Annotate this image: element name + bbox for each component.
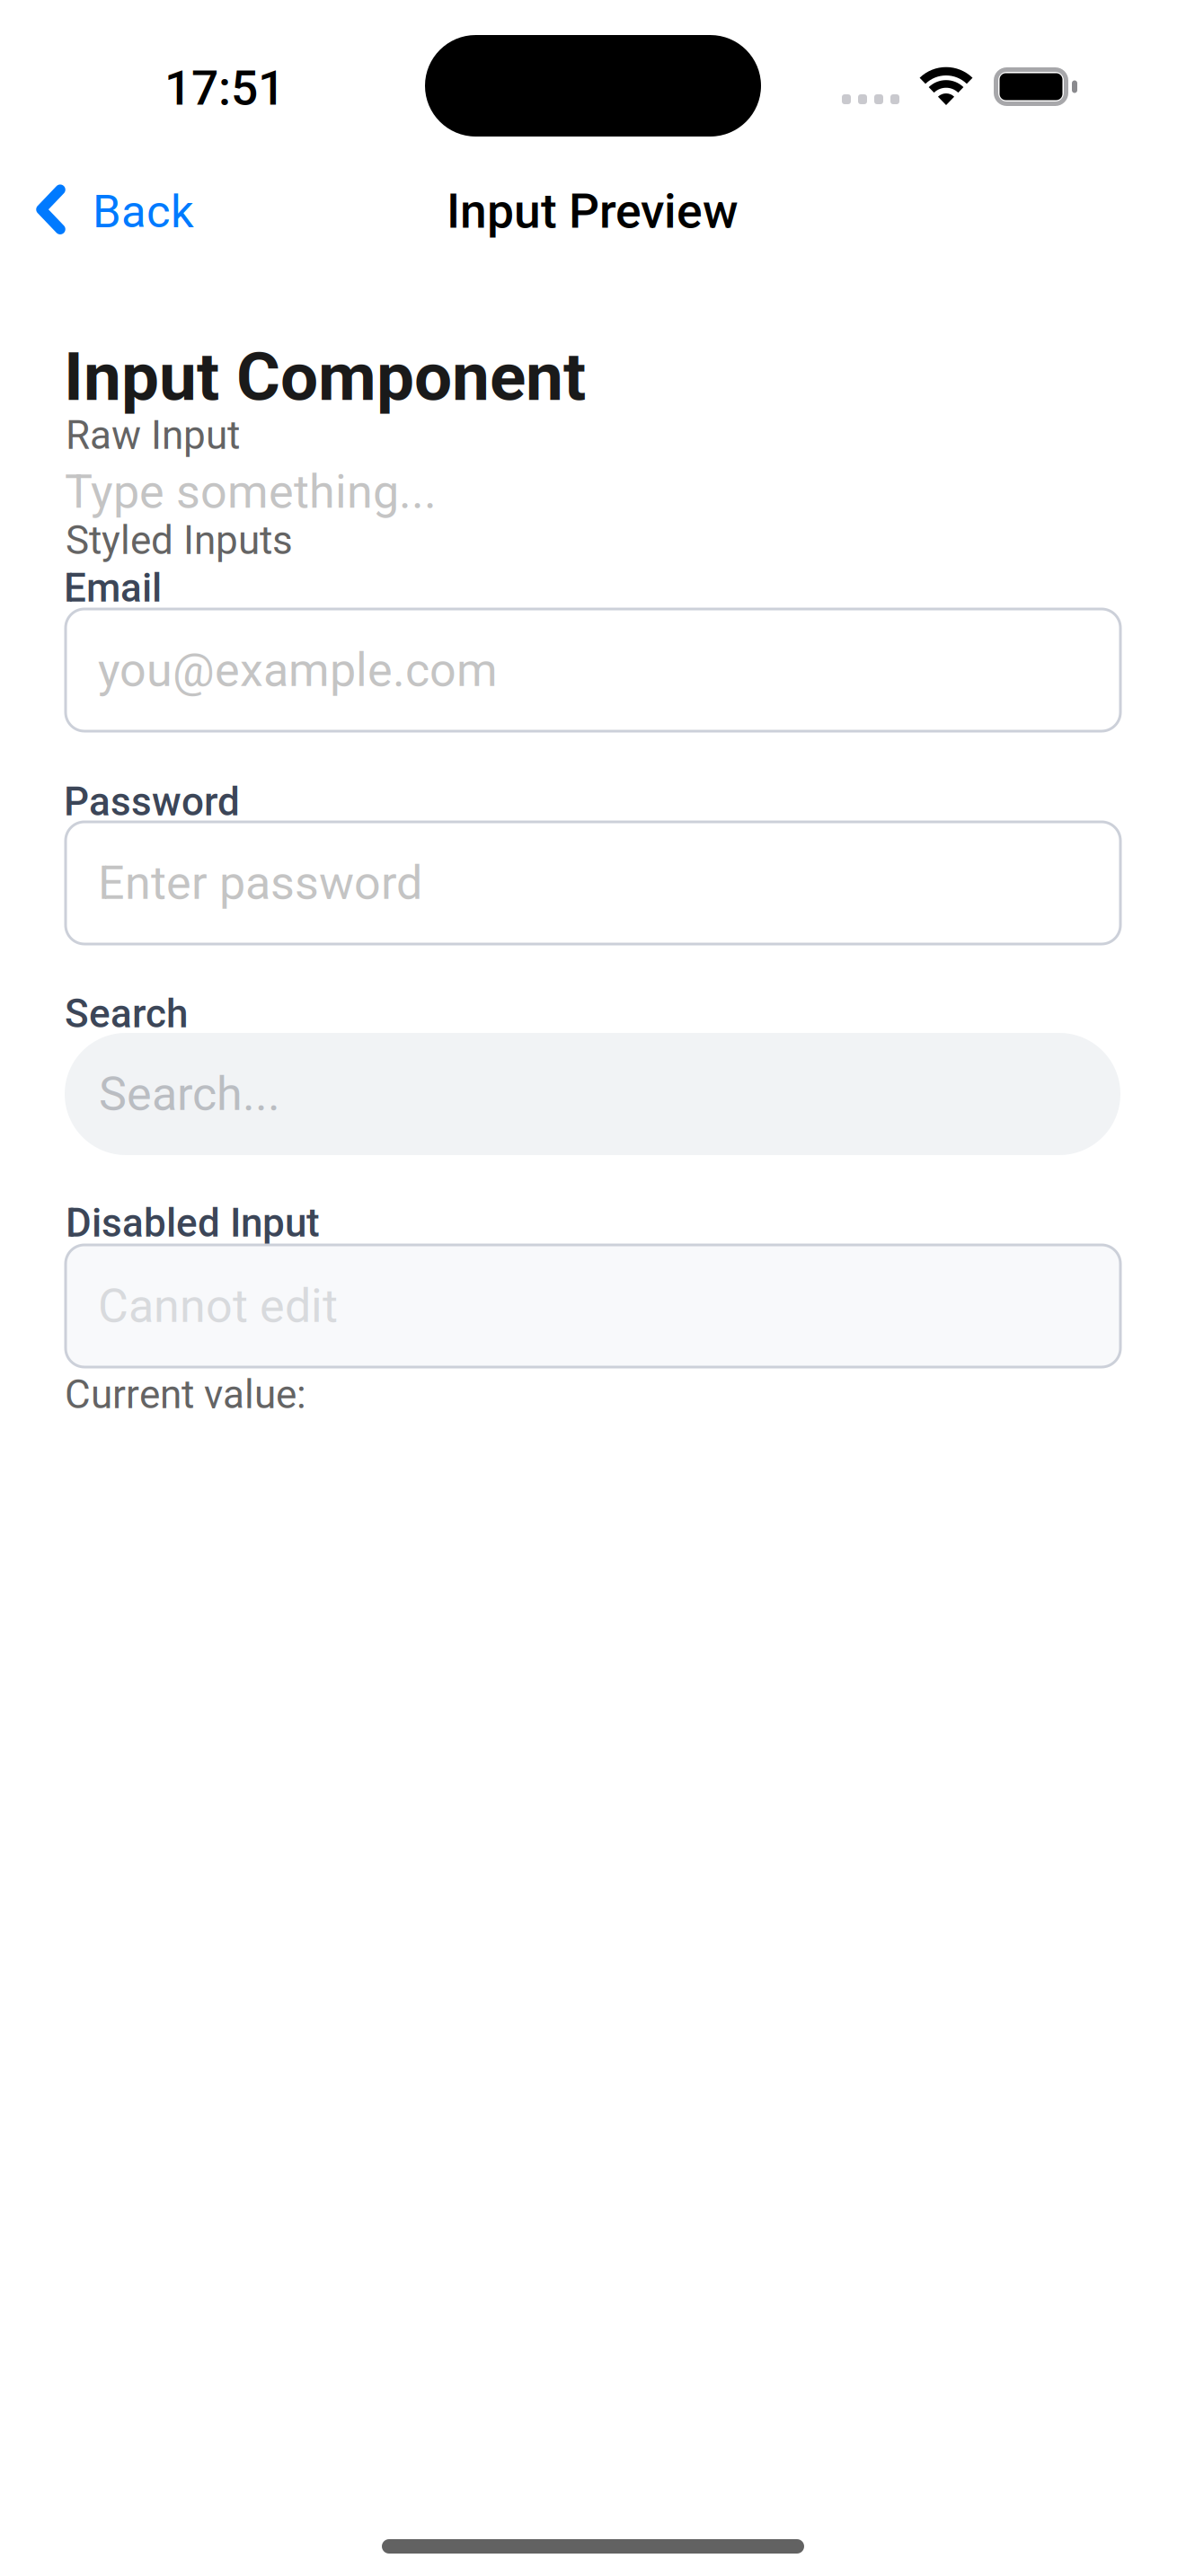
staticText: Disabled Input (66, 1200, 320, 1246)
button[interactable]: you@example.com (66, 609, 1120, 731)
staticText: Current value: (65, 1372, 306, 1418)
staticText: Password (64, 779, 240, 825)
staticText: Raw Input (66, 412, 240, 459)
staticText: Styled Inputs (66, 517, 293, 564)
button[interactable]: Cannot edit (66, 1245, 1120, 1367)
button[interactable]: Enter password (66, 822, 1120, 944)
staticText: Back (93, 185, 194, 238)
staticText: Input Preview (447, 183, 739, 239)
staticText: you@example.com (98, 643, 498, 697)
staticText: Enter password (98, 856, 422, 910)
staticText: Input Component (64, 338, 586, 416)
staticText: Search... (99, 1067, 280, 1121)
staticText: Cannot edit (98, 1279, 338, 1333)
staticText: Search (65, 991, 188, 1037)
button[interactable]: Back (36, 178, 194, 242)
staticText: Type something... (65, 464, 437, 519)
staticText: Email (64, 565, 162, 611)
staticText: 17:51 (164, 60, 285, 116)
button[interactable]: Search... (65, 1033, 1120, 1155)
